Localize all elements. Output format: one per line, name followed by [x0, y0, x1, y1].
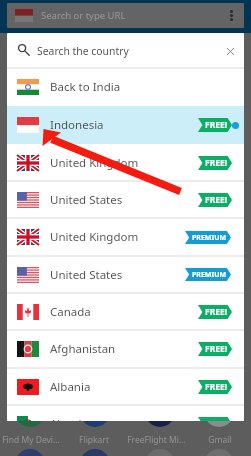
button[interactable]: Search or type URL	[7, 3, 244, 28]
staticText: Algeria	[50, 416, 89, 421]
button[interactable]: United States	[7, 256, 244, 293]
staticText: Albania	[50, 379, 91, 395]
staticText: Afghanistan	[50, 341, 116, 357]
button[interactable]: Back to India	[7, 68, 244, 106]
staticText: FREE!	[205, 194, 228, 206]
staticText: United States	[50, 192, 123, 208]
staticText: United States	[50, 267, 123, 283]
button[interactable]: More options	[218, 3, 244, 28]
staticText: Find My Devi...	[2, 434, 60, 446]
staticText: FREE!	[205, 381, 228, 393]
button[interactable]: Algeria	[7, 405, 244, 421]
staticText: United Kingdom	[50, 155, 139, 171]
staticText: Search or type URL	[41, 9, 126, 22]
staticText: FREE!	[205, 157, 228, 169]
button[interactable]: Indonesia	[7, 106, 244, 144]
staticText: FREE!	[205, 119, 228, 131]
button[interactable]: Gmail	[188, 433, 251, 446]
staticText: Gmail	[208, 434, 232, 446]
button[interactable]: Canada	[7, 293, 244, 330]
staticText: Flipkart	[79, 434, 109, 446]
staticText: FREE!	[205, 343, 228, 355]
button[interactable]: United Kingdom	[7, 218, 244, 256]
button[interactable]: Afghanistan	[7, 330, 244, 368]
button[interactable]: Albania	[7, 368, 244, 405]
staticText: United Kingdom	[50, 229, 139, 245]
staticText: PREMIUM	[192, 270, 227, 280]
staticText: Search the country	[37, 44, 129, 58]
staticText: FreeFlight Mi...	[127, 434, 186, 446]
button[interactable]: Flipkart	[62, 433, 125, 446]
staticText: PREMIUM	[192, 233, 227, 243]
staticText: Back to India	[50, 79, 121, 95]
button[interactable]: Clear	[216, 37, 244, 65]
button[interactable]: FreeFlight Mi...	[125, 433, 188, 446]
button[interactable]: Find My Devi...	[0, 433, 62, 446]
staticText: FREE!	[205, 306, 228, 318]
staticText: Indonesia	[50, 117, 104, 133]
button[interactable]: United Kingdom	[7, 144, 244, 181]
button[interactable]: United States	[7, 181, 244, 218]
staticText: Canada	[50, 304, 91, 320]
